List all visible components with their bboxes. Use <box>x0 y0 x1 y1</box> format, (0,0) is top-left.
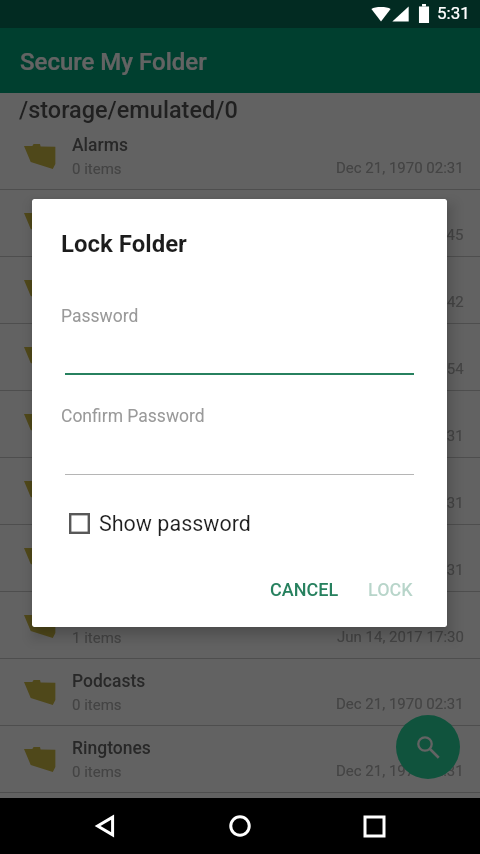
staticText: LOCK <box>368 579 413 600</box>
button[interactable]: Movies <box>0 391 480 458</box>
staticText: Jun 14, 2017 17:30 <box>337 628 464 646</box>
button[interactable]: Pictures <box>0 592 480 659</box>
staticText: Secure My Folder <box>20 48 207 76</box>
button[interactable]: Android <box>0 190 480 257</box>
staticText: Show password <box>99 511 251 536</box>
staticText: 5:31 <box>437 3 470 23</box>
button[interactable]: Music <box>0 458 480 525</box>
staticText: 8 items <box>72 361 122 379</box>
staticText: Dec 21, 1970 02:31 <box>336 695 464 713</box>
staticText: Dec 21, 1970 02:31 <box>336 494 464 512</box>
staticText: Password <box>61 306 139 327</box>
staticText: /storage/emulated/0 <box>19 96 238 124</box>
staticText: Movies <box>72 403 129 424</box>
staticText: Confirm Password <box>61 406 205 427</box>
button[interactable]: Search <box>396 715 460 779</box>
staticText: Alarms <box>72 135 128 156</box>
staticText: Lock Folder <box>61 230 187 258</box>
staticText: 1 items <box>72 629 122 647</box>
button[interactable]: Podcasts <box>0 659 480 726</box>
button[interactable]: Back <box>95 815 117 837</box>
button[interactable]: Alarms <box>0 123 480 190</box>
staticText: 0 items <box>72 696 122 714</box>
staticText: Dec 21, 1970 02:31 <box>336 427 464 445</box>
button[interactable]: Ringtones <box>0 726 480 793</box>
staticText: Feb 02, 2018 09:54 <box>337 360 464 378</box>
button[interactable]: DCIM <box>0 257 480 324</box>
staticText: 0 items <box>72 763 122 781</box>
staticText: Dec 21, 1970 02:31 <box>336 762 464 780</box>
button[interactable]: Download <box>0 324 480 391</box>
button[interactable]: Show password <box>63 507 257 540</box>
staticText: CANCEL <box>270 579 339 600</box>
staticText: 0 items <box>72 160 122 178</box>
staticText: Podcasts <box>72 671 146 692</box>
staticText: Dec 21, 1970 02:31 <box>336 159 464 177</box>
staticText: Mar 08, 2018 08:45 <box>335 226 464 244</box>
staticText: Dec 21, 1970 02:31 <box>336 561 464 579</box>
button[interactable]: Recents <box>365 817 384 836</box>
button[interactable]: Home <box>229 815 251 837</box>
staticText: Ringtones <box>72 738 151 759</box>
button[interactable]: Notifications <box>0 525 480 592</box>
button[interactable]: CANCEL <box>256 570 353 609</box>
staticText: Jan 14, 2018 11:42 <box>337 293 464 311</box>
button[interactable]: LOCK <box>353 570 428 609</box>
staticText: 5 items <box>72 227 122 245</box>
staticText: Music <box>72 470 120 491</box>
